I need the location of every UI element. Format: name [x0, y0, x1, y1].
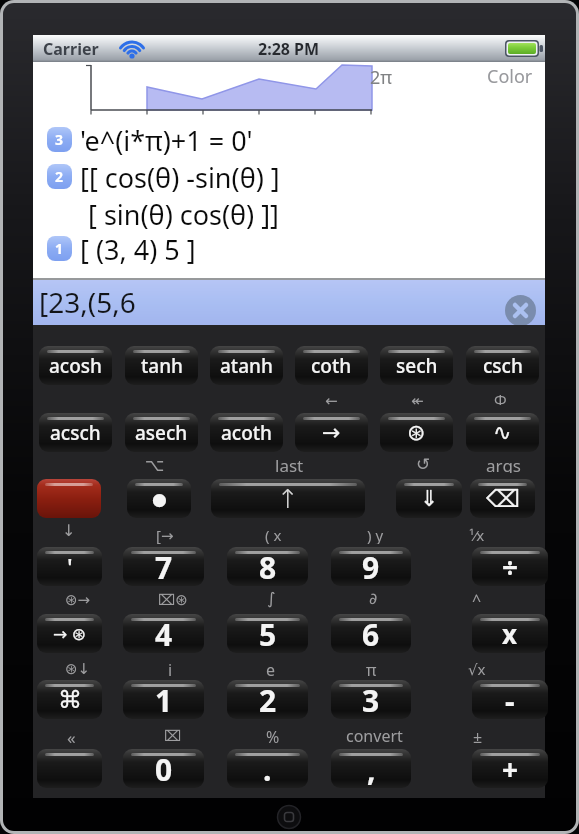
staticText: →	[322, 420, 341, 446]
staticText: last	[275, 454, 304, 473]
staticText: → ⊛	[53, 622, 86, 645]
staticText: ¹⁄x	[469, 525, 485, 544]
staticText: ∫	[267, 589, 276, 608]
staticText: atanh	[220, 353, 273, 379]
button[interactable]: coth	[295, 346, 368, 385]
button[interactable]: sech	[380, 346, 453, 385]
button[interactable]: 2	[227, 680, 308, 719]
button[interactable]: acoth	[210, 413, 283, 452]
staticText: ⌘	[58, 686, 82, 714]
button[interactable]: ⌘	[37, 680, 102, 719]
button[interactable]: csch	[466, 346, 539, 385]
staticText: Carrier	[43, 38, 99, 60]
staticText: -	[505, 680, 515, 719]
staticText: ⊛↓	[65, 660, 91, 677]
button[interactable]: ,	[331, 749, 411, 788]
staticText: 2	[259, 680, 277, 719]
button[interactable]: 0	[123, 749, 204, 788]
staticText: ⌫	[486, 485, 520, 513]
staticText: ↞	[411, 392, 424, 409]
button[interactable]: 9	[331, 547, 411, 586]
staticText: csch	[483, 353, 523, 379]
staticText: acosh	[49, 353, 102, 379]
button[interactable]: ÷	[472, 547, 548, 586]
staticText: asech	[135, 420, 188, 446]
button[interactable]: atanh	[210, 346, 283, 385]
staticText: ●	[152, 489, 167, 509]
staticText: 1	[55, 239, 64, 258]
button[interactable]: Color	[480, 64, 540, 88]
button[interactable]: [ (3, 4) 5 ]	[80, 230, 196, 268]
staticText: [→	[156, 525, 174, 544]
staticText: tanh	[141, 353, 183, 379]
staticText: [ sin(θ) cos(θ) ]]	[88, 196, 279, 233]
staticText: e	[266, 659, 276, 678]
button[interactable]: .	[227, 749, 308, 788]
button[interactable]: ∿	[466, 413, 539, 452]
button[interactable]: 6	[331, 614, 411, 653]
staticText: 2π	[370, 65, 393, 90]
button[interactable]: acosh	[39, 346, 112, 385]
button[interactable]: ⌫	[470, 479, 535, 518]
button[interactable]: 4	[123, 614, 204, 653]
button[interactable]: '	[37, 547, 102, 586]
button[interactable]: [[ cos(θ) -sin(θ) ]	[80, 158, 280, 196]
staticText: ÷	[502, 548, 519, 586]
staticText: i	[168, 659, 173, 678]
button[interactable]: 'e^(i*π)+1 = 0'	[80, 121, 253, 159]
button[interactable]: ↑	[211, 479, 365, 518]
button[interactable]: acsch	[39, 413, 112, 452]
staticText: +	[502, 750, 519, 788]
staticText: 'e^(i*π)+1 = 0'	[80, 122, 253, 159]
button[interactable]: asech	[125, 413, 198, 452]
button[interactable]: -	[472, 680, 548, 719]
staticText: 7	[155, 547, 173, 586]
staticText: 8	[259, 547, 277, 586]
button[interactable]: ⇓	[396, 479, 462, 518]
staticText: ⌧⊛	[158, 591, 188, 608]
button[interactable]	[37, 749, 102, 788]
button[interactable]: 1	[47, 236, 72, 261]
staticText: x	[502, 616, 518, 651]
button[interactable]: ●	[127, 479, 191, 518]
button[interactable]: 2	[47, 164, 72, 189]
staticText: ↑	[277, 484, 299, 514]
staticText: ↓	[62, 521, 76, 540]
button[interactable]: x	[472, 614, 548, 653]
staticText: '	[67, 550, 73, 583]
button[interactable]: tanh	[125, 346, 198, 385]
staticText: ^	[472, 589, 482, 608]
button[interactable]	[505, 295, 536, 326]
staticText: 0	[155, 749, 173, 788]
staticText: ,	[367, 749, 376, 788]
staticText: 4	[155, 614, 173, 653]
button[interactable]: 5	[227, 614, 308, 653]
button[interactable]: 3	[47, 127, 72, 152]
staticText: coth	[311, 353, 352, 379]
staticText: 1	[155, 680, 173, 719]
button[interactable]: 3	[331, 680, 411, 719]
button[interactable]: 1	[123, 680, 204, 719]
staticText: [23,(5,6	[39, 283, 136, 321]
staticText: √x	[468, 659, 486, 678]
staticText: ±	[473, 726, 483, 745]
button[interactable]	[37, 479, 101, 518]
button[interactable]: 7	[123, 547, 204, 586]
staticText: 9	[362, 547, 380, 586]
staticText: Φ	[494, 389, 507, 408]
staticText: 3	[55, 130, 64, 149]
staticText: 6	[362, 614, 380, 653]
button[interactable]: 8	[227, 547, 308, 586]
staticText: convert	[346, 725, 403, 744]
staticText: Color	[487, 64, 533, 88]
staticText: ⌧	[164, 727, 182, 744]
button[interactable]: → ⊛	[37, 614, 102, 653]
staticText: ⌥	[145, 455, 165, 474]
button[interactable]: →	[295, 413, 368, 452]
staticText: π	[366, 659, 377, 678]
staticText: ↺	[416, 454, 431, 473]
button[interactable]: +	[472, 749, 548, 788]
button[interactable]: ⊛	[380, 413, 453, 452]
staticText: ←	[325, 392, 338, 409]
staticText: [[ cos(θ) -sin(θ) ]	[80, 159, 280, 196]
